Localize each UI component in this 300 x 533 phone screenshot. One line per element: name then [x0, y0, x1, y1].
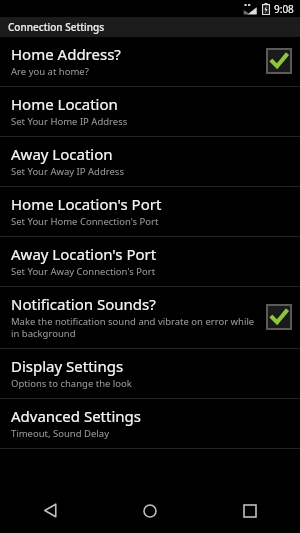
- button[interactable]: Away Location: [0, 137, 300, 186]
- staticText: Make the notification sound and vibrate …: [11, 315, 261, 340]
- button[interactable]: Back: [0, 488, 100, 533]
- button[interactable]: Recent apps: [200, 488, 300, 533]
- staticText: Away Location: [11, 144, 113, 164]
- staticText: Away Location's Port: [11, 244, 157, 264]
- button[interactable]: Away Location's Port: [0, 237, 300, 286]
- staticText: Connection Settings: [8, 20, 105, 34]
- staticText: 9:08: [274, 2, 294, 16]
- staticText: Home Location: [11, 94, 118, 114]
- button[interactable]: Display Settings: [0, 349, 300, 398]
- staticText: Set Your Home Connection's Port: [11, 215, 159, 228]
- staticText: Set Your Away Connection's Port: [11, 265, 156, 278]
- button[interactable]: Toggle: [267, 49, 291, 73]
- staticText: Options to change the look: [11, 377, 132, 390]
- button[interactable]: Home Location's Port: [0, 187, 300, 236]
- button[interactable]: Home: [100, 488, 200, 533]
- staticText: Set Your Away IP Address: [11, 165, 124, 178]
- staticText: Notification Sounds?: [11, 294, 156, 314]
- button[interactable]: Notification Sounds?: [0, 287, 300, 348]
- staticText: Display Settings: [11, 356, 124, 376]
- staticText: Are you at home?: [11, 65, 89, 78]
- staticText: Home Location's Port: [11, 194, 162, 214]
- staticText: Set Your Home IP Address: [11, 115, 128, 128]
- staticText: Advanced Settings: [11, 406, 141, 426]
- staticText: Home Address?: [11, 44, 121, 64]
- button[interactable]: Home Location: [0, 87, 300, 136]
- staticText: Timeout, Sound Delay: [11, 427, 109, 440]
- button[interactable]: Toggle: [267, 305, 291, 329]
- button[interactable]: Home Address?: [0, 37, 300, 86]
- button[interactable]: Advanced Settings: [0, 399, 300, 448]
